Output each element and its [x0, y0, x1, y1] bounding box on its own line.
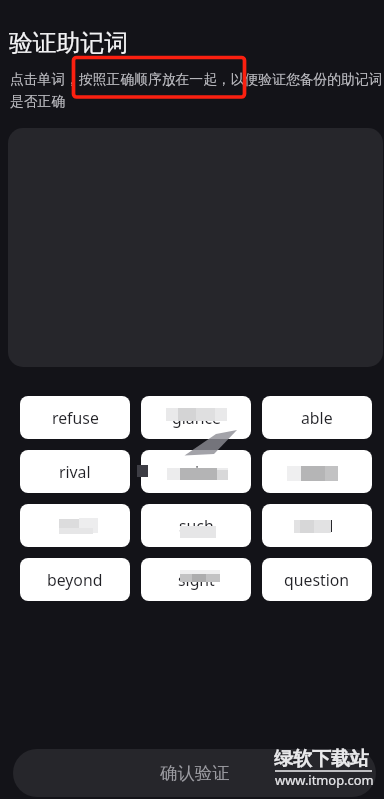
staticText: glance: [172, 407, 221, 429]
staticText: 确认验证: [160, 762, 230, 784]
button[interactable]: area: [20, 504, 130, 547]
button[interactable]: refuse: [20, 396, 130, 439]
staticText: until: [300, 515, 334, 537]
staticText: sight: [178, 569, 215, 591]
button[interactable]: beyond: [20, 558, 130, 601]
button[interactable]: 确认验证: [13, 749, 376, 797]
staticText: able: [301, 407, 333, 429]
button[interactable]: glance: [141, 396, 251, 439]
button[interactable]: sight: [141, 558, 251, 601]
staticText: 绿软下载站: [274, 747, 369, 771]
staticText: 验证助记词: [9, 28, 128, 58]
staticText: rival: [59, 461, 91, 483]
button[interactable]: question: [262, 558, 372, 601]
staticText: shell: [300, 461, 335, 483]
button[interactable]: such: [141, 504, 251, 547]
staticText: 点击单词，按照正确顺序放在一起，以便验证您备份的助记词是否正确: [10, 71, 384, 110]
button[interactable]: rival: [20, 450, 130, 493]
button[interactable]: swine: [141, 450, 251, 493]
button[interactable]: able: [262, 396, 372, 439]
staticText: www.itmop.com: [275, 771, 374, 789]
staticText: refuse: [52, 407, 99, 429]
button[interactable]: until: [262, 504, 372, 547]
staticText: beyond: [47, 569, 103, 591]
button[interactable]: shell: [262, 450, 372, 493]
staticText: area: [59, 515, 92, 537]
staticText: swine: [175, 461, 218, 483]
staticText: such: [179, 515, 214, 537]
staticText: question: [284, 569, 350, 591]
